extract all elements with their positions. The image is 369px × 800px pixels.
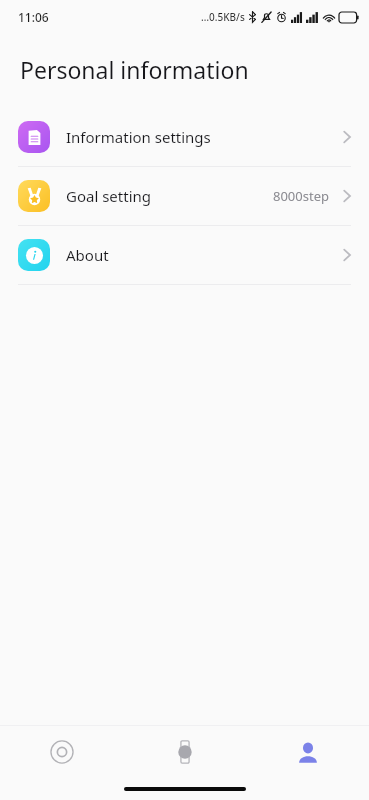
button[interactable]: About [0,226,369,284]
button[interactable]: Dashboard [0,726,123,778]
staticText: …0.5KB/s [201,10,245,24]
button[interactable]: Information settings [0,108,369,166]
staticText: Goal setting [66,186,152,206]
staticText: 8000step [273,187,329,205]
staticText: Personal information [20,54,249,85]
button[interactable]: Goal setting [0,167,369,225]
staticText: About [66,245,109,265]
staticText: 11:06 [18,9,49,25]
button[interactable]: Profile [246,726,369,778]
button[interactable]: Device [123,726,246,778]
staticText: Information settings [66,127,211,147]
